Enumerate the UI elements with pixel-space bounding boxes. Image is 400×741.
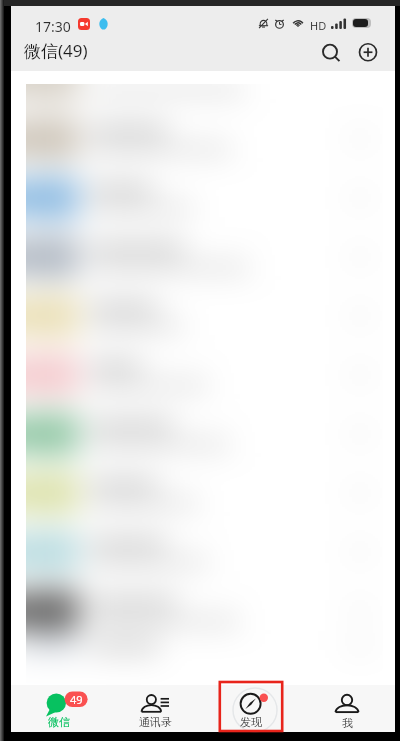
staticText: 通讯录 — [139, 715, 172, 729]
staticText: 17:30 — [35, 17, 71, 36]
button[interactable]: 通讯录 — [107, 685, 203, 732]
button[interactable]: 我 — [299, 685, 395, 732]
staticText: 微信(49) — [24, 39, 88, 62]
staticText: 我 — [342, 716, 353, 730]
button[interactable]: Search — [314, 36, 346, 65]
staticText: HD — [310, 18, 327, 33]
staticText: 发现 — [240, 715, 262, 729]
button[interactable]: 发现 — [203, 685, 299, 732]
button[interactable]: Add — [352, 36, 384, 65]
staticText: 微信 — [48, 715, 70, 729]
button[interactable]: 49 — [11, 685, 107, 732]
staticText: 49 — [70, 692, 83, 707]
